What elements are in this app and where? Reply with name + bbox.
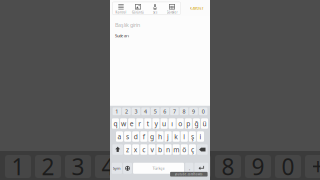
button[interactable]: 5 [151,107,159,115]
staticText: 4 [144,108,147,115]
button[interactable]: Kontrol [112,2,129,15]
staticText: v [150,145,153,154]
button[interactable]: Görevler [163,2,180,15]
staticText: 3 [134,108,137,115]
staticText: q [113,119,117,128]
staticText: u [162,119,166,128]
staticText: t [147,119,149,128]
staticText: 1 [11,151,24,180]
button[interactable]: ı [169,118,176,129]
staticText: j [167,132,169,141]
button[interactable]: n [165,144,172,155]
staticText: w [121,119,126,128]
button[interactable]: ş [189,131,196,142]
button[interactable]: w [120,118,127,129]
staticText: e [130,119,134,128]
button[interactable]: 2 [122,107,131,115]
button[interactable]: x [132,144,139,155]
button[interactable]: c [140,144,147,155]
staticText: ı [171,119,173,128]
staticText: ş [191,132,194,141]
button[interactable]: m [173,144,180,155]
staticText: a [117,132,121,141]
button[interactable]: 6 [160,107,169,115]
staticText: ü [202,119,206,128]
button[interactable]: y [152,118,159,129]
staticText: ç [191,145,194,154]
button[interactable]: Sym [112,163,122,174]
button[interactable]: ğ [193,118,200,129]
staticText: 1 [115,108,118,115]
staticText: 8 [221,151,234,180]
button[interactable]: Ses [146,2,163,15]
staticText: 2 [125,108,128,115]
staticText: Sym [113,166,121,171]
button[interactable]: d [132,131,139,142]
button[interactable]: i [197,131,204,142]
button[interactable]: b [156,144,163,155]
staticText: 4 [101,151,114,180]
staticText: youtube.com/howto [175,172,203,176]
staticText: s [126,132,129,141]
button[interactable]: p [185,118,192,129]
staticText: 0 [202,108,205,115]
button[interactable]: q [112,118,119,129]
staticText: y [154,119,157,128]
staticText: d [134,132,138,141]
button[interactable]: r [136,118,143,129]
staticText: g [150,132,154,141]
staticText: 5 [131,151,144,180]
staticText: 5 [154,108,157,115]
staticText: Sude arı [115,33,129,38]
staticText: 2 [41,151,54,180]
staticText: Görüntü [132,11,144,14]
button[interactable]: 1 [112,107,121,115]
button[interactable]: Türkçe [133,163,184,174]
button[interactable]: 8 [180,107,188,115]
button[interactable]: Return [194,163,208,174]
button[interactable]: Görüntü [129,2,146,15]
button[interactable]: ü [201,118,208,129]
button[interactable]: Backspace [197,144,208,155]
staticText: m [173,145,179,154]
staticText: Görevler [166,11,177,14]
button[interactable]: l [181,131,188,142]
button[interactable]: 3 [132,107,140,115]
button[interactable]: f [140,131,147,142]
staticText: 7 [173,108,176,115]
staticText: 0 [281,151,294,180]
staticText: Türkçe [152,166,164,171]
staticText: k [174,132,178,141]
button[interactable]: 0 [199,107,207,115]
button[interactable]: j [165,131,172,142]
button[interactable]: g [148,131,155,142]
button[interactable]: u [160,118,167,129]
button[interactable]: a [116,131,123,142]
staticText: c [142,145,145,154]
button[interactable]: ö [181,144,188,155]
button[interactable]: s [124,131,131,142]
staticText: z [126,145,129,154]
button[interactable]: v [148,144,155,155]
button[interactable]: t [144,118,151,129]
button[interactable]: 7 [170,107,179,115]
button[interactable]: . [185,163,193,174]
staticText: l [183,132,185,141]
staticText: Ses [153,11,157,14]
button[interactable]: Shift [112,144,123,155]
button[interactable]: 9 [189,107,198,115]
button[interactable]: k [173,131,180,142]
button[interactable]: ç [189,144,196,155]
button[interactable]: KAYDET [187,2,205,15]
button[interactable]: o [177,118,184,129]
staticText: 6 [161,151,174,180]
button[interactable]: h [156,131,163,142]
button[interactable]: z [124,144,131,155]
staticText: 7 [191,151,204,180]
button[interactable]: 4 [141,107,150,115]
button[interactable]: Language [123,163,132,174]
staticText: i [199,132,201,141]
staticText: KAYDET [189,6,203,11]
staticText: 9 [192,108,195,115]
button[interactable]: e [128,118,135,129]
